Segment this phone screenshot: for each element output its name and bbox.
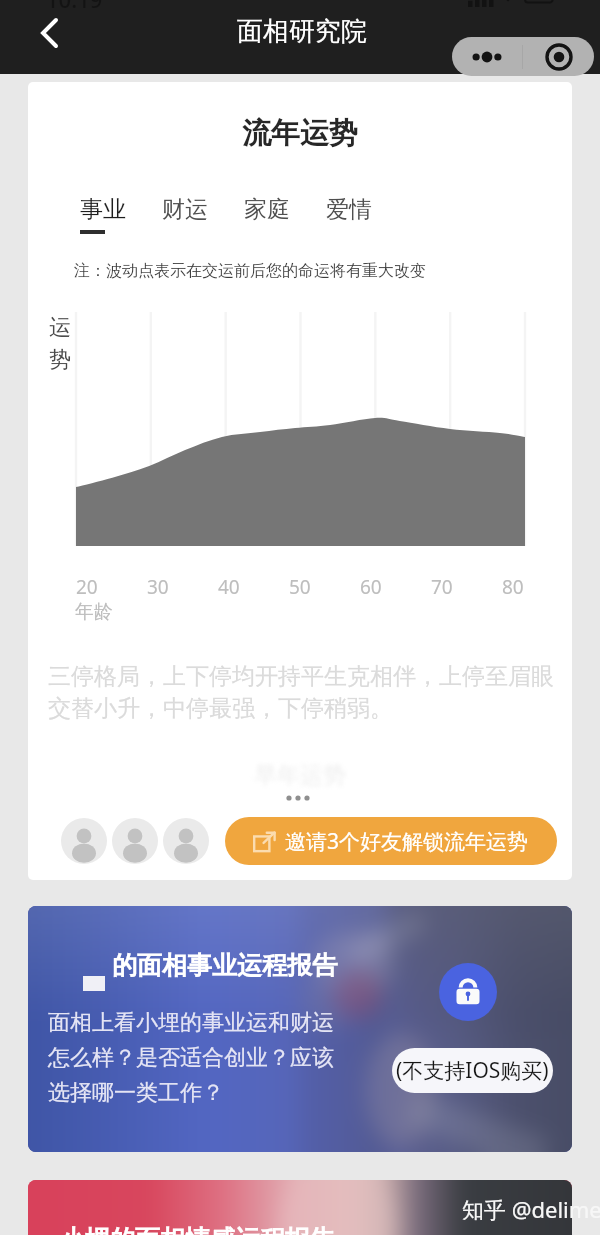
staticText: 事业 [80,195,126,224]
button[interactable]: 小埋的面相情感运程报告 [28,1180,572,1235]
button[interactable]: 爱情 [324,195,374,234]
staticText: (不支持IOS购买) [396,1056,549,1085]
staticText: 面相研究院 [237,15,367,48]
staticText: 家庭 [244,195,290,224]
staticText: 知乎 @delimer [462,1194,600,1224]
staticText: 三停格局，上下停均开持平生克相伴，上停至眉眼 交替小升，中停最强，下停稍弱。 [48,662,554,723]
staticText: 年龄 [75,600,113,624]
staticText: 60 [360,574,382,600]
button[interactable]: 事业 [78,195,128,234]
staticText: 财运 [162,195,208,224]
button[interactable]: 财运 [160,195,210,234]
staticText: 的面相事业运程报告 [112,950,337,981]
button[interactable]: Close mini program [523,37,594,76]
staticText: 80 [502,574,524,600]
staticText: 注：波动点表示在交运前后您的命运将有重大改变 [74,261,426,281]
button[interactable]: 家庭 [242,195,292,234]
staticText: 30 [147,574,169,600]
staticText: 40 [218,574,240,600]
staticText: 小埋的面相情感运程报告 [60,1224,335,1235]
staticText: 面相上看小埋的事业运和财运 怎么样？是否适合创业？应该 选择哪一类工作？ [48,1009,334,1107]
staticText: 运 势 [49,314,71,373]
staticText: 邀请3个好友解锁流年运势 [285,827,529,856]
staticText: 70 [431,574,453,600]
staticText: 流年运势 [28,115,572,152]
button[interactable]: 的面相事业运程报告 [28,906,572,1152]
staticText: 10:19 [46,0,103,14]
button[interactable]: 邀请3个好友解锁流年运势 [225,817,557,865]
staticText: 50 [289,574,311,600]
staticText: 爱情 [326,195,372,224]
button[interactable]: More options [452,37,522,76]
button[interactable]: Back [23,7,75,59]
staticText: 20 [76,574,98,600]
